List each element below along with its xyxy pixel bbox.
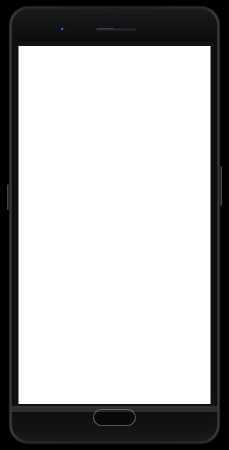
other: Phone device frame with blank screen — [0, 0, 229, 450]
